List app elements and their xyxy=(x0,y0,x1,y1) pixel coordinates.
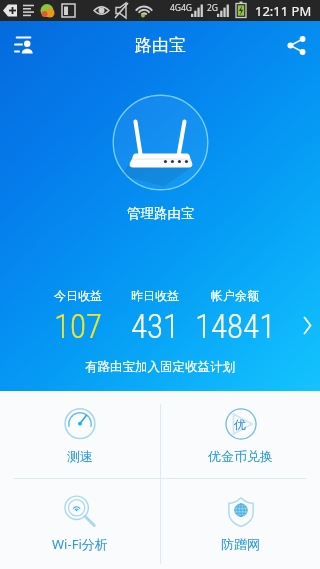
staticText: 帐户余额 xyxy=(211,288,259,303)
staticText: 107 xyxy=(54,307,103,346)
button[interactable]: Share xyxy=(272,21,320,69)
button[interactable]: 测速 xyxy=(0,391,160,478)
staticText: 优 xyxy=(234,417,246,432)
staticText: 管理路由宝 xyxy=(127,205,195,222)
staticText: 4G xyxy=(170,2,182,14)
staticText: 路由宝 xyxy=(135,35,186,56)
button[interactable]: Account xyxy=(0,21,48,69)
staticText: Wi-Fi分析 xyxy=(52,535,108,553)
button[interactable]: 优 xyxy=(160,391,320,478)
staticText: 14841 xyxy=(195,307,276,346)
button[interactable]: Wi-Fi分析 xyxy=(0,479,160,566)
staticText: 昨日收益 xyxy=(131,288,179,303)
staticText: 今日收益 xyxy=(54,288,102,303)
staticText: 12:11 PM xyxy=(255,2,312,20)
staticText: 优金币兑换 xyxy=(208,448,273,464)
button[interactable]: 防蹭网 xyxy=(160,479,320,566)
staticText: 431 xyxy=(131,307,180,346)
staticText: 有路由宝加入固定收益计划 xyxy=(0,359,320,375)
staticText: 测速 xyxy=(67,448,93,464)
staticText: 防蹭网 xyxy=(221,536,260,552)
staticText: 4G xyxy=(181,2,193,14)
staticText: 2G xyxy=(207,2,219,14)
button[interactable]: Manage router xyxy=(112,94,209,191)
